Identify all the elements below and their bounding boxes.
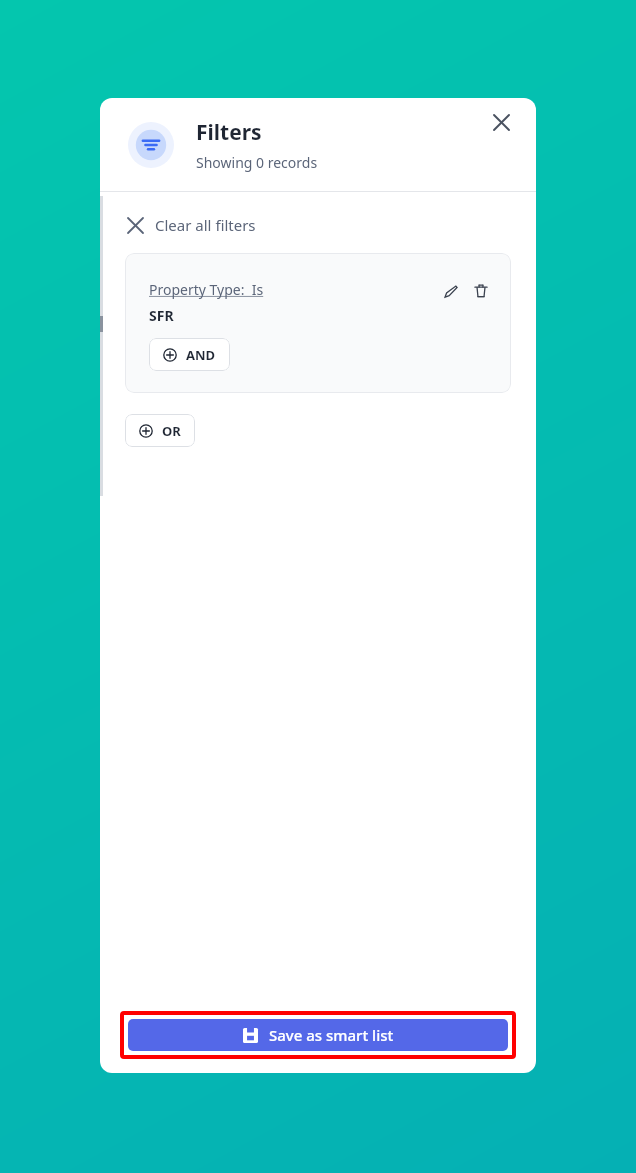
staticText: Save as smart list <box>269 1025 394 1045</box>
staticText: Showing 0 records <box>196 153 318 172</box>
button[interactable]: Clear all filters <box>120 209 264 241</box>
button[interactable]: Close <box>486 107 516 137</box>
button[interactable]: AND <box>149 338 230 371</box>
staticText: Clear all filters <box>155 215 256 235</box>
button[interactable]: Delete filter <box>469 279 493 303</box>
staticText: Filters <box>196 118 262 147</box>
staticText: Property Type: Is <box>149 280 264 299</box>
button[interactable]: Save as smart list <box>128 1019 508 1051</box>
button[interactable]: Edit filter <box>439 279 463 303</box>
staticText: AND <box>186 346 216 364</box>
staticText: OR <box>162 422 181 440</box>
button[interactable]: OR <box>125 414 195 447</box>
staticText: SFR <box>149 306 174 325</box>
